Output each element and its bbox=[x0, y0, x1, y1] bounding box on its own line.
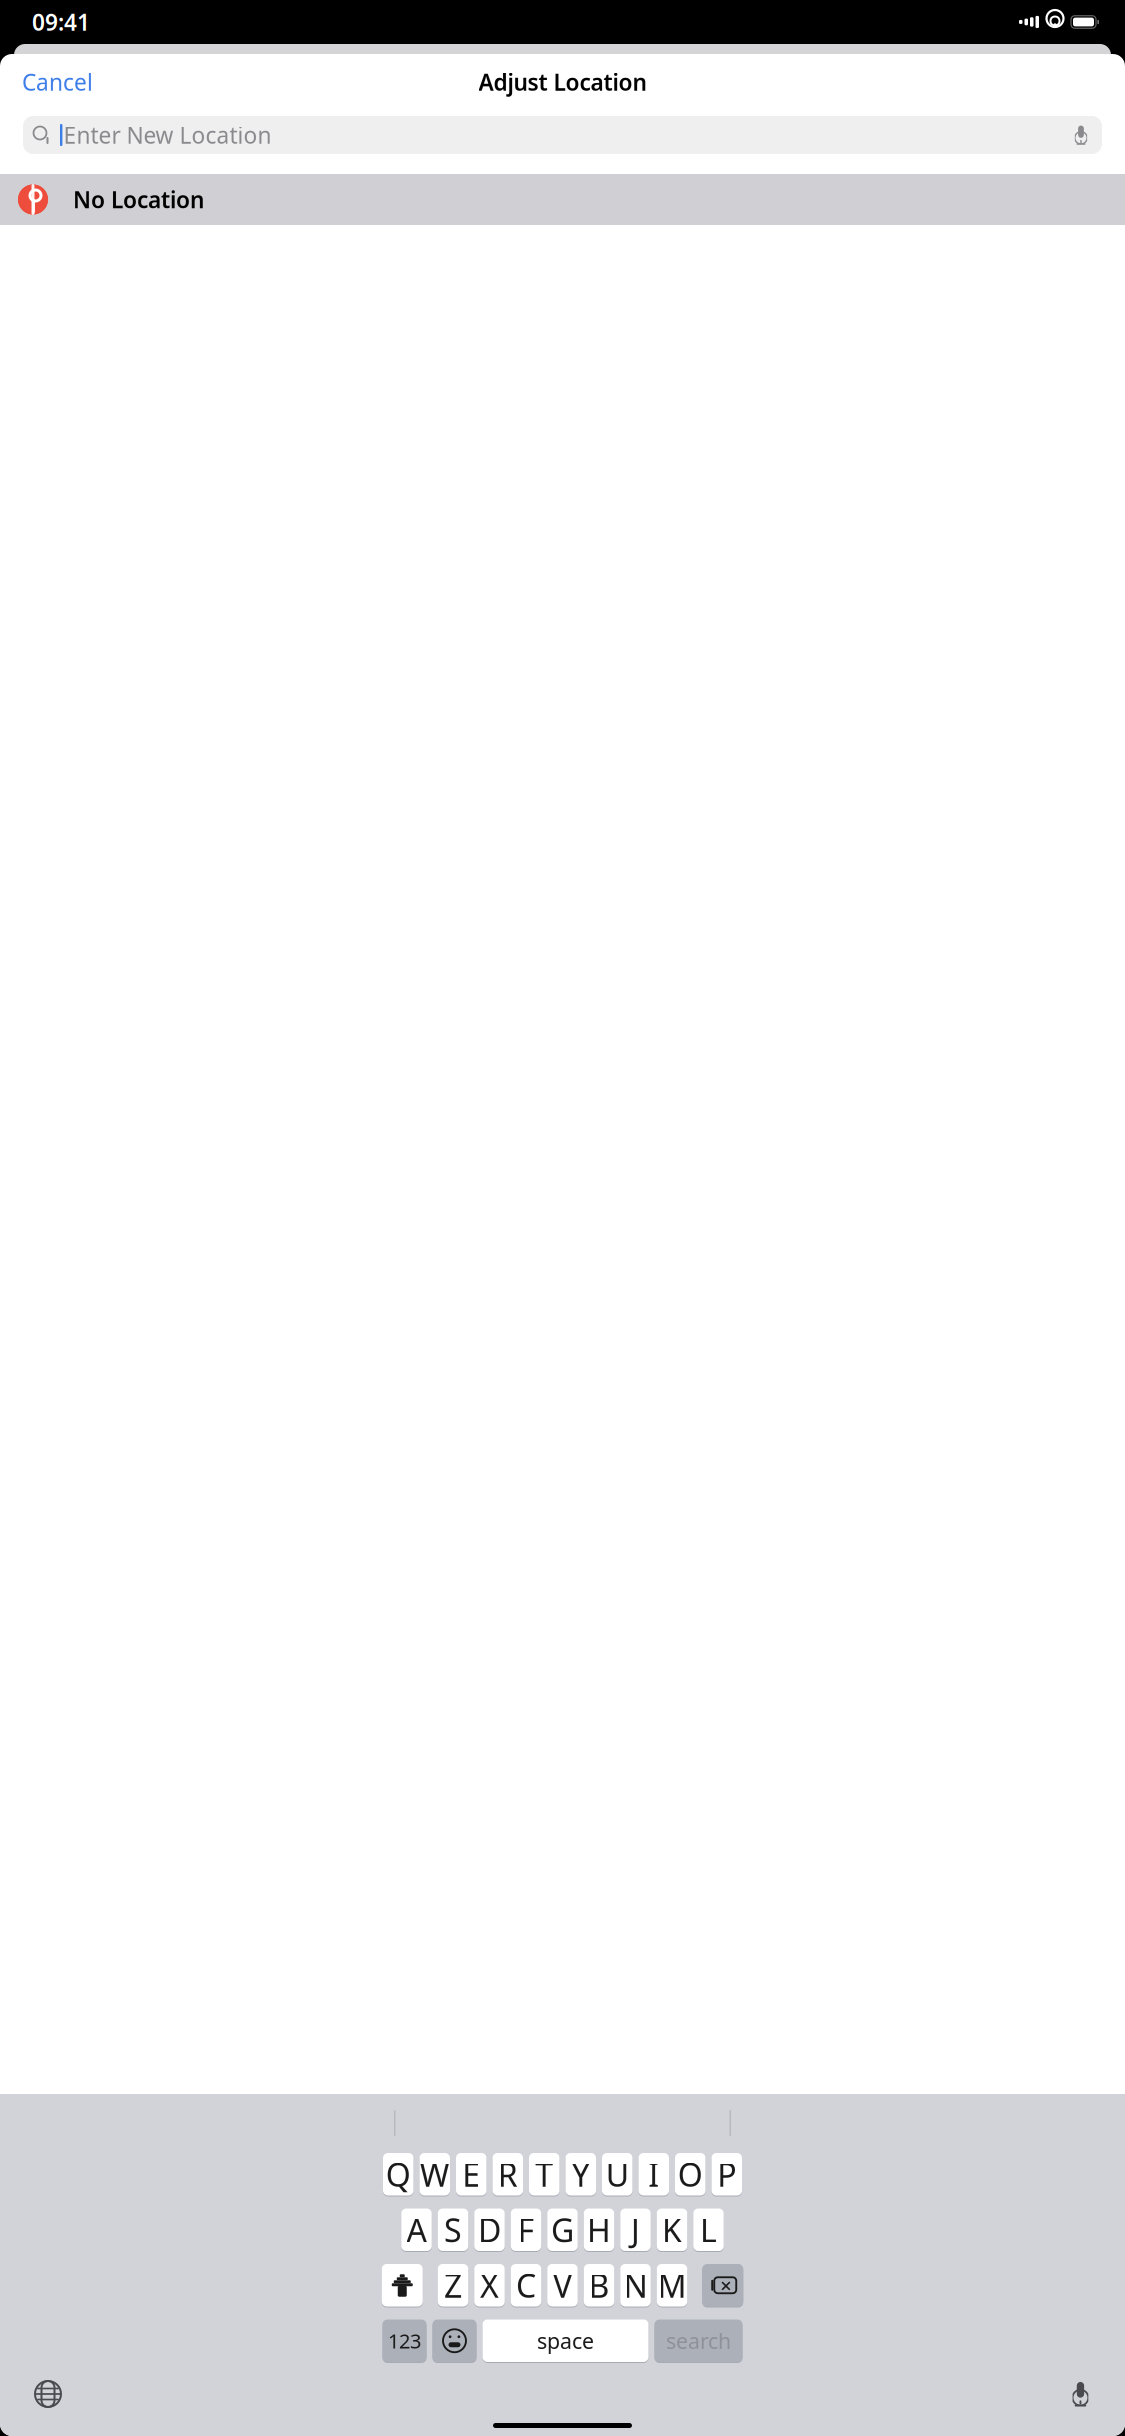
staticText: X bbox=[480, 2264, 499, 2306]
button[interactable]: J bbox=[620, 2207, 651, 2252]
button[interactable]: H bbox=[584, 2207, 614, 2252]
button[interactable]: Change keyboard bbox=[33, 2379, 63, 2409]
staticText: Enter New Location bbox=[63, 120, 271, 150]
button[interactable]: V bbox=[547, 2263, 578, 2307]
button[interactable]: search bbox=[654, 2318, 742, 2363]
staticText: P bbox=[717, 2153, 736, 2195]
staticText: N bbox=[623, 2264, 647, 2306]
button[interactable]: F bbox=[511, 2207, 541, 2252]
staticText: C bbox=[516, 2264, 536, 2306]
staticText: T bbox=[535, 2153, 553, 2195]
staticText: 123 bbox=[388, 2327, 421, 2354]
staticText: K bbox=[662, 2208, 682, 2251]
button[interactable]: C bbox=[511, 2263, 541, 2307]
button[interactable]: E bbox=[456, 2152, 486, 2196]
staticText: B bbox=[588, 2264, 609, 2306]
staticText: F bbox=[517, 2208, 534, 2251]
button[interactable]: No Location bbox=[0, 174, 1125, 225]
staticText: W bbox=[420, 2153, 450, 2195]
button[interactable]: I bbox=[638, 2152, 669, 2196]
button[interactable]: 123 bbox=[382, 2318, 426, 2363]
button[interactable]: Cancel bbox=[6, 57, 109, 107]
staticText: 09:41 bbox=[32, 7, 90, 37]
staticText: M bbox=[657, 2264, 686, 2306]
staticText: Z bbox=[444, 2264, 462, 2306]
staticText: No Location bbox=[73, 184, 204, 214]
staticText: E bbox=[462, 2153, 480, 2195]
button[interactable]: Delete bbox=[702, 2263, 743, 2307]
staticText: A bbox=[406, 2208, 426, 2251]
button[interactable]: Shift bbox=[382, 2263, 423, 2307]
staticText: Cancel bbox=[22, 67, 93, 97]
staticText: V bbox=[553, 2264, 572, 2306]
button[interactable]: R bbox=[492, 2152, 523, 2196]
button[interactable]: U bbox=[602, 2152, 632, 2196]
button[interactable]: space bbox=[482, 2318, 648, 2363]
button[interactable]: Y bbox=[565, 2152, 596, 2196]
staticText: H bbox=[587, 2208, 611, 2251]
staticText: I bbox=[648, 2153, 659, 2195]
staticText: L bbox=[700, 2208, 717, 2251]
button[interactable]: Emoji bbox=[432, 2318, 476, 2363]
staticText: U bbox=[606, 2153, 629, 2195]
button[interactable]: Enter New Location bbox=[23, 116, 1102, 154]
staticText: R bbox=[498, 2153, 518, 2195]
button[interactable]: Z bbox=[438, 2263, 468, 2307]
staticText: J bbox=[631, 2208, 640, 2251]
staticText: × bbox=[720, 2272, 731, 2299]
button[interactable]: K bbox=[657, 2207, 687, 2252]
button[interactable]: G bbox=[547, 2207, 578, 2252]
button[interactable]: T bbox=[529, 2152, 559, 2196]
button[interactable]: D bbox=[474, 2207, 505, 2252]
button[interactable]: X bbox=[474, 2263, 505, 2307]
button[interactable]: O bbox=[675, 2152, 705, 2196]
staticText: Adjust Location bbox=[478, 67, 646, 97]
button[interactable]: P bbox=[711, 2152, 742, 2196]
staticText: space bbox=[537, 2327, 594, 2355]
button[interactable]: A bbox=[401, 2207, 432, 2252]
button[interactable]: N bbox=[620, 2263, 651, 2307]
staticText: Y bbox=[572, 2153, 590, 2195]
button[interactable]: M bbox=[657, 2263, 687, 2307]
staticText: D bbox=[478, 2208, 501, 2251]
staticText: O bbox=[678, 2153, 703, 2195]
staticText: search bbox=[666, 2327, 731, 2355]
button[interactable]: W bbox=[419, 2152, 450, 2196]
staticText: S bbox=[444, 2208, 462, 2251]
button[interactable]: Q bbox=[383, 2152, 413, 2196]
button[interactable]: B bbox=[584, 2263, 614, 2307]
button[interactable]: Dictate bbox=[1069, 2380, 1092, 2408]
staticText: G bbox=[551, 2208, 574, 2251]
button[interactable]: L bbox=[693, 2207, 724, 2252]
button[interactable]: S bbox=[438, 2207, 468, 2252]
staticText: Q bbox=[386, 2153, 411, 2195]
